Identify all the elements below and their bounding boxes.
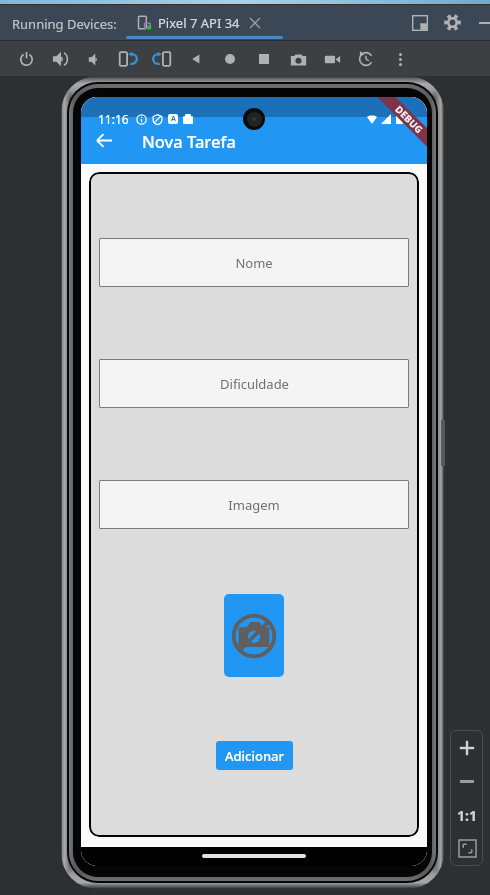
button[interactable]: Record	[315, 42, 349, 76]
staticText: Running Devices:	[12, 15, 117, 33]
button[interactable]: Nome	[99, 238, 409, 287]
button[interactable]: Imagem	[99, 480, 409, 529]
button[interactable]: Volume up	[43, 42, 77, 76]
staticText: Nome	[235, 254, 273, 272]
button[interactable]: Pixel 7 API 34	[126, 5, 282, 40]
button[interactable]: Fit to screen	[452, 833, 482, 863]
button[interactable]: Rotate left	[111, 42, 145, 76]
button[interactable]: Zoom in	[452, 733, 482, 763]
staticText: Adicionar	[225, 747, 285, 765]
button[interactable]: Minimize	[472, 5, 490, 40]
button[interactable]: Split window	[406, 5, 433, 40]
button[interactable]: Imagem	[224, 594, 284, 677]
button[interactable]: Screenshot	[281, 42, 315, 76]
staticText: Dificuldade	[220, 375, 289, 393]
button[interactable]: Back	[179, 42, 213, 76]
staticText: Imagem	[228, 496, 280, 514]
button[interactable]: Home	[213, 42, 247, 76]
button[interactable]: Close tab	[248, 16, 262, 30]
staticText: 1:1	[457, 806, 477, 825]
button[interactable]: Back	[84, 117, 124, 164]
button[interactable]: Settings	[439, 5, 466, 40]
button[interactable]: History	[349, 42, 383, 76]
staticText: DEBUG	[392, 103, 426, 137]
staticText: A	[171, 114, 176, 124]
staticText: Nova Tarefa	[142, 130, 236, 152]
button[interactable]: 1:1	[452, 800, 482, 830]
button[interactable]: More	[383, 42, 417, 76]
staticText: Pixel 7 API 34	[158, 14, 240, 32]
button[interactable]: Power	[9, 42, 43, 76]
button[interactable]: Zoom out	[452, 766, 482, 796]
staticText: 11:16	[98, 111, 129, 127]
button[interactable]: Volume down	[77, 42, 111, 76]
button[interactable]: Adicionar	[216, 741, 293, 770]
button[interactable]: Overview	[247, 42, 281, 76]
button[interactable]: Rotate right	[145, 42, 179, 76]
button[interactable]: Dificuldade	[99, 359, 409, 408]
